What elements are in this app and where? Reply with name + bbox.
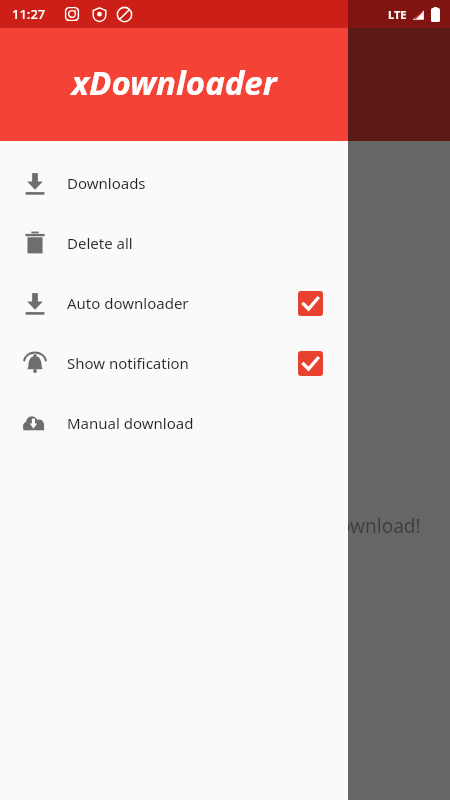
staticText: Downloads xyxy=(67,173,348,193)
staticText: xDownloader xyxy=(71,60,277,105)
staticText: Show notification xyxy=(67,353,298,373)
staticText: Manual download xyxy=(67,413,348,433)
staticText: 11:27 xyxy=(12,5,46,23)
button[interactable]: Auto downloader xyxy=(0,273,348,333)
button[interactable]: Toggle Auto downloader xyxy=(298,291,323,316)
button[interactable]: Toggle Show notification xyxy=(298,351,323,376)
button[interactable]: Downloads xyxy=(0,153,348,213)
button[interactable]: Manual download xyxy=(0,393,348,453)
staticText: Delete all xyxy=(67,233,348,253)
button[interactable]: Show notification xyxy=(0,333,348,393)
staticText: Tap + to start a download! xyxy=(190,513,421,539)
staticText: LTE xyxy=(388,7,407,22)
staticText: Auto downloader xyxy=(67,293,298,313)
button[interactable]: Delete all xyxy=(0,213,348,273)
